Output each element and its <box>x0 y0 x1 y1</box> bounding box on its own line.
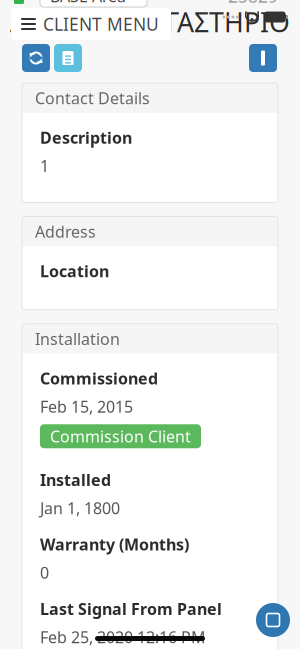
staticText: Feb 15, 2015 <box>40 396 133 417</box>
staticText: Feb 25, 2020 12:16 PM <box>40 626 206 648</box>
staticText: CLIENT MENU <box>43 12 159 35</box>
button[interactable]: Edit <box>249 44 277 72</box>
staticText: Jan 1, 1800 <box>40 497 120 519</box>
staticText: ΔΟΚΙΜΕΣ ΕΡΓΑΣΤΗΡΙΟ <box>10 4 290 40</box>
staticText: Installed <box>40 469 111 490</box>
staticText: 1 <box>40 155 49 176</box>
staticText: 12:18 <box>27 5 72 28</box>
button[interactable]: Refresh <box>22 44 50 72</box>
staticText: Installation <box>35 328 120 349</box>
staticText: Address <box>35 221 96 242</box>
button[interactable]: Chat <box>256 603 300 637</box>
staticText: Warranty (Months) <box>40 534 189 555</box>
staticText: 25829 <box>228 0 278 7</box>
button[interactable]: Commission Client <box>40 424 201 448</box>
button[interactable]: CLIENT MENU <box>0 0 171 40</box>
staticText: Location <box>40 260 109 282</box>
staticText: Description <box>40 127 132 148</box>
staticText: Last Signal From Panel <box>40 598 222 619</box>
staticText: 0 <box>40 562 49 583</box>
staticText: BASE Area <box>50 0 126 7</box>
staticText: Commission Client <box>50 426 191 447</box>
staticText: Commissioned <box>40 368 158 389</box>
button[interactable]: BASE Area <box>30 0 147 7</box>
staticText: Contact Details <box>35 87 150 109</box>
button[interactable]: Document <box>54 44 82 72</box>
